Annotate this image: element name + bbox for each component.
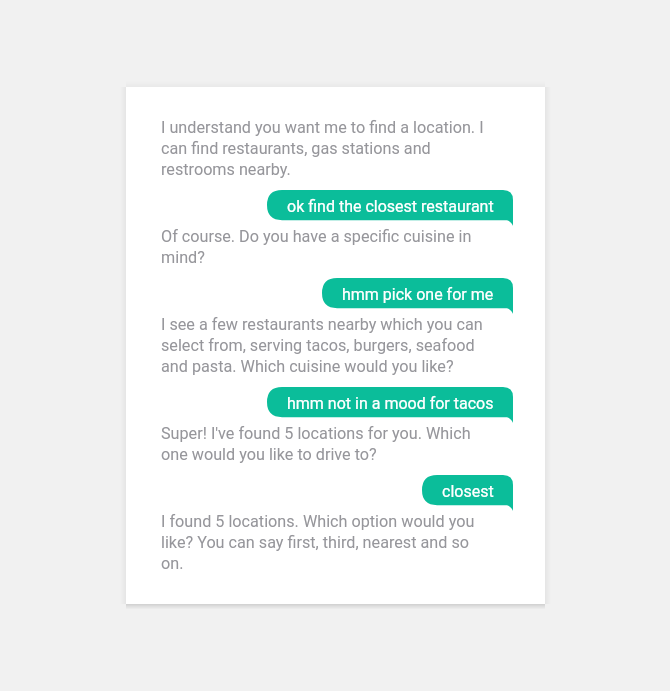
button[interactable]: hmm not in a mood for tacos [267,387,513,423]
button[interactable]: hmm pick one for me [322,278,513,314]
staticText: hmm not in a mood for tacos [287,394,494,413]
staticText: Of course. Do you have a specific cuisin… [161,227,489,267]
button[interactable]: ok find the closest restaurant [267,190,513,226]
staticText: I understand you want me to find a locat… [161,118,489,179]
staticText: hmm pick one for me [342,285,494,304]
button[interactable]: closest [422,475,513,511]
staticText: I see a few restaurants nearby which you… [161,315,489,376]
staticText: I found 5 locations. Which option would … [161,512,489,573]
staticText: ok find the closest restaurant [287,197,494,216]
staticText: closest [442,482,494,501]
staticText: Super! I've found 5 locations for you. W… [161,424,489,464]
